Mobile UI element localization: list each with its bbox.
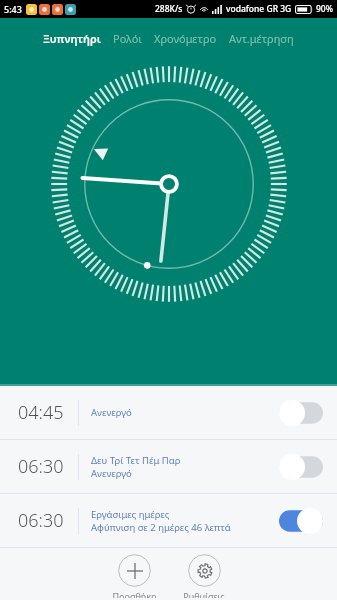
staticText: Ξυπνητήρι — [43, 31, 101, 46]
staticText: 288K/s — [155, 3, 183, 15]
button[interactable]: Ξυπνητήρι — [37, 25, 107, 52]
staticText: 5:43 — [4, 3, 22, 15]
button[interactable]: Alarm off — [279, 454, 323, 480]
staticText: 04:45 — [18, 400, 64, 425]
staticText: Αφύπνιση σε 2 ημέρες 46 λεπτά — [91, 521, 231, 534]
staticText: Ανενεργό — [91, 406, 132, 419]
button[interactable]: 04:45 — [0, 386, 337, 439]
staticText: 90% — [316, 3, 333, 15]
button[interactable]: Ρολόι — [107, 25, 148, 52]
staticText: 06:30 — [18, 454, 64, 479]
button[interactable]: Προσθήκη — [106, 552, 163, 600]
staticText: Ρυθμίσεις — [183, 590, 225, 598]
staticText: Δευ Τρί Τετ Πέμ Παρ — [91, 454, 181, 467]
staticText: 06:30 — [18, 508, 64, 533]
staticText: Εργάσιμες ημέρες — [91, 508, 170, 521]
staticText: Ρολόι — [113, 31, 142, 46]
staticText: vodafone GR 3G — [226, 3, 292, 15]
staticText: Ανενεργό — [91, 467, 132, 480]
staticText: Προσθήκη — [112, 590, 157, 598]
button[interactable]: Alarm on — [279, 508, 323, 534]
button[interactable]: 06:30 — [0, 440, 337, 493]
staticText: Αντ.μέτρηση — [229, 31, 294, 46]
staticText: Χρονόμετρο — [154, 31, 217, 46]
button[interactable]: Alarm off — [279, 400, 323, 426]
button[interactable]: Χρονόμετρο — [148, 25, 223, 52]
button[interactable]: Αντ.μέτρηση — [223, 25, 300, 52]
button[interactable]: Ρυθμίσεις — [177, 552, 231, 600]
button[interactable]: 06:30 — [0, 494, 337, 547]
